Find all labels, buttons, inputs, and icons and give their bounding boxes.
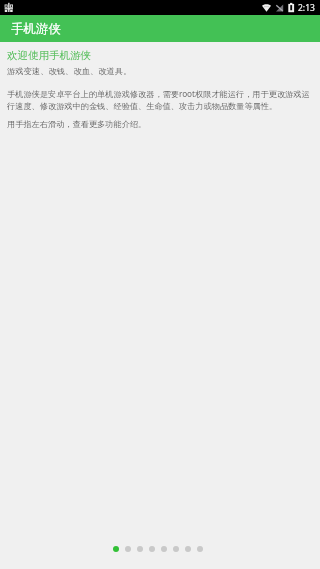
staticText: 欢迎使用手机游侠 (7, 49, 91, 62)
button[interactable]: Page 4 (149, 546, 155, 552)
button[interactable]: Page 8 (197, 546, 203, 552)
staticText: 游戏变速、改钱、改血、改道具。 (7, 66, 132, 76)
button[interactable]: Page 7 (185, 546, 191, 552)
staticText: 手机游侠是安卓平台上的单机游戏修改器，需要root权限才能运行，用于更改游戏运行… (7, 88, 313, 111)
staticText: 2:13 (298, 2, 315, 14)
button[interactable]: Page 3 (137, 546, 143, 552)
button[interactable]: Page 5 (161, 546, 167, 552)
button[interactable]: Page 6 (173, 546, 179, 552)
button[interactable]: Page 2 (125, 546, 131, 552)
staticText: 手机游侠 (11, 21, 61, 37)
button[interactable]: Page 1 (113, 546, 119, 552)
staticText: 用手指左右滑动，查看更多功能介绍。 (7, 119, 147, 129)
button[interactable]: 手机游侠 (0, 15, 320, 42)
